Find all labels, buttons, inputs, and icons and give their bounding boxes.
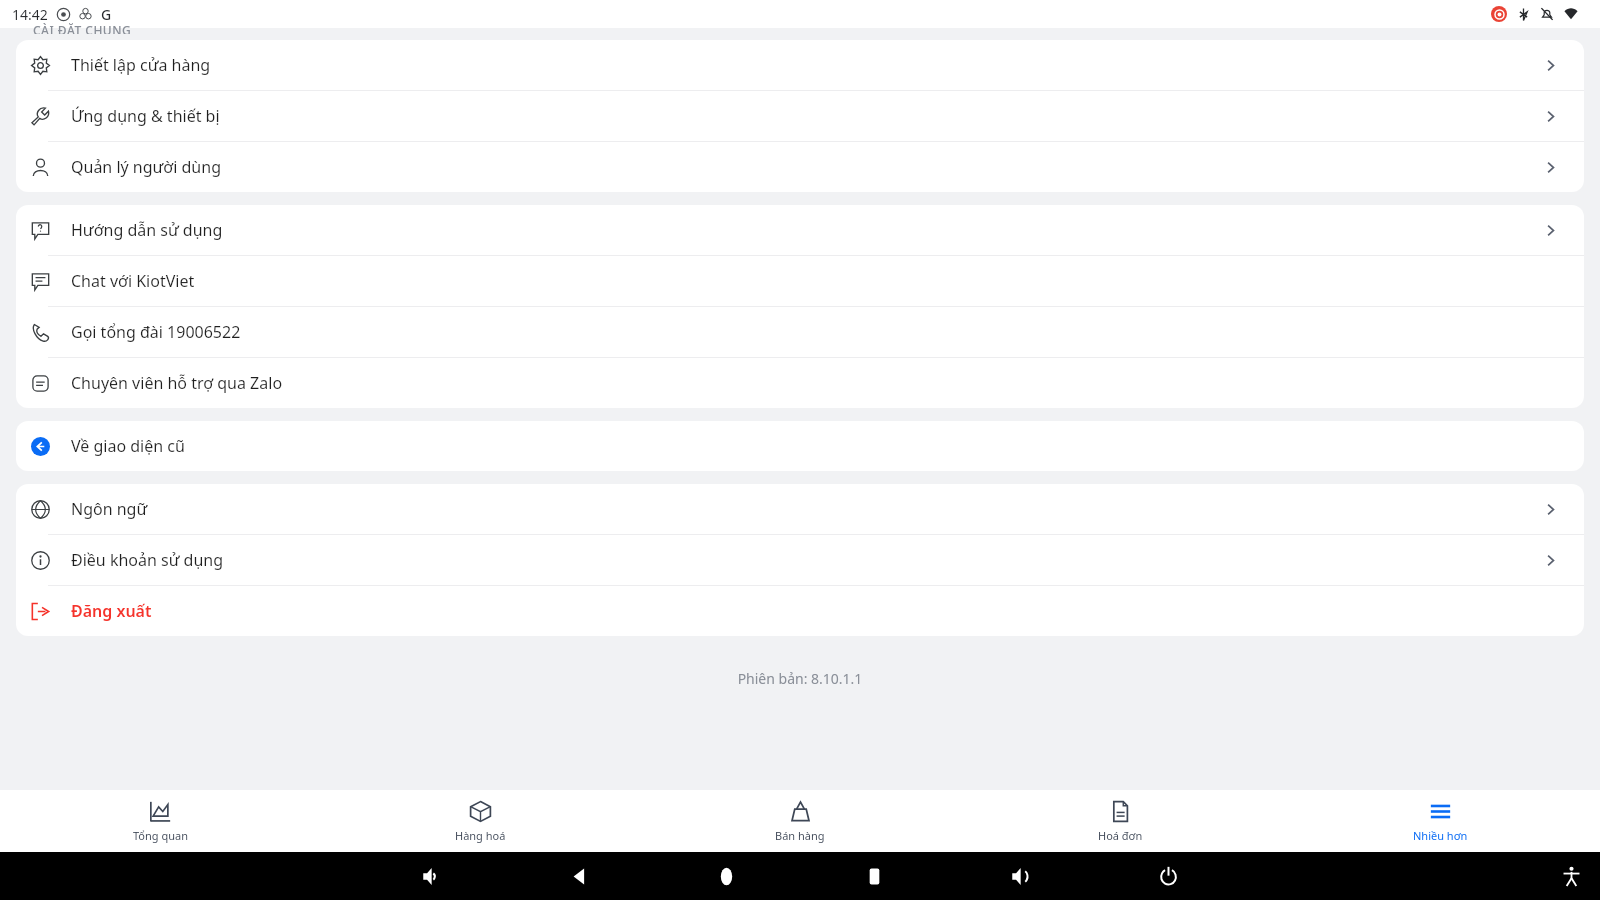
button[interactable]: Volume up: [999, 854, 1043, 898]
staticText: Ứng dụng & thiết bị: [71, 105, 220, 127]
button[interactable]: Điều khoản sử dụng: [16, 535, 1584, 585]
button[interactable]: Home: [704, 854, 748, 898]
button[interactable]: Quản lý người dùng: [16, 142, 1584, 192]
staticText: Hoá đơn: [1098, 828, 1143, 843]
button[interactable]: Chat với KiotViet: [16, 256, 1584, 306]
button[interactable]: Accessibility: [1556, 861, 1586, 891]
staticText: G: [101, 5, 112, 24]
staticText: Thiết lập cửa hàng: [71, 54, 211, 76]
button[interactable]: Đăng xuất: [16, 586, 1584, 636]
button[interactable]: Recents: [852, 854, 896, 898]
staticText: Hướng dẫn sử dụng: [71, 219, 223, 241]
staticText: Điều khoản sử dụng: [71, 549, 224, 571]
button[interactable]: Chuyên viên hỗ trợ qua Zalo: [16, 358, 1584, 408]
staticText: Ngôn ngữ: [71, 498, 148, 520]
button[interactable]: Thiết lập cửa hàng: [16, 40, 1584, 90]
staticText: Phiên bản: 8.10.1.1: [0, 669, 1600, 688]
staticText: Hàng hoá: [455, 828, 506, 843]
staticText: Bán hàng: [775, 828, 825, 843]
staticText: Chat với KiotViet: [71, 270, 195, 292]
button[interactable]: Gọi tổng đài 19006522: [16, 307, 1584, 357]
staticText: Quản lý người dùng: [71, 156, 221, 178]
button[interactable]: Ứng dụng & thiết bị: [16, 91, 1584, 141]
button[interactable]: Power: [1146, 854, 1190, 898]
button[interactable]: Về giao diện cũ: [16, 421, 1584, 471]
staticText: Về giao diện cũ: [71, 435, 185, 457]
staticText: Đăng xuất: [71, 600, 152, 622]
button[interactable]: Volume down: [410, 854, 454, 898]
staticText: Gọi tổng đài 19006522: [71, 321, 241, 343]
button[interactable]: Back: [557, 854, 601, 898]
button[interactable]: Ngôn ngữ: [16, 484, 1584, 534]
staticText: Tổng quan: [133, 828, 188, 843]
staticText: 14:42: [12, 5, 48, 24]
button[interactable]: Tổng quan: [0, 790, 320, 852]
staticText: CÀI ĐẶT CHUNG: [33, 22, 132, 34]
button[interactable]: Hướng dẫn sử dụng: [16, 205, 1584, 255]
button[interactable]: Nhiều hơn: [1280, 790, 1600, 852]
staticText: Nhiều hơn: [1413, 828, 1468, 843]
staticText: Chuyên viên hỗ trợ qua Zalo: [71, 372, 283, 394]
button[interactable]: Hoá đơn: [960, 790, 1280, 852]
button[interactable]: Hàng hoá: [320, 790, 640, 852]
button[interactable]: Bán hàng: [640, 790, 960, 852]
